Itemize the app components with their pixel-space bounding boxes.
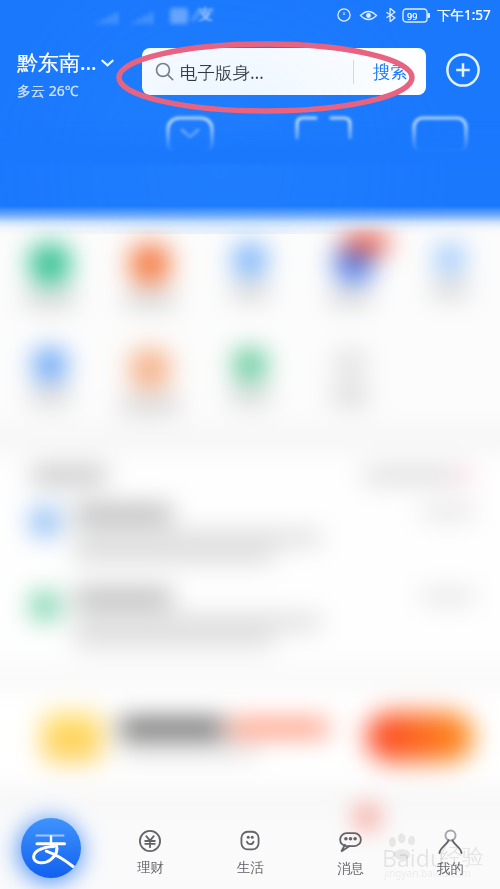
staticText: 黔东南…	[17, 48, 97, 77]
button[interactable]: 我的	[400, 800, 500, 889]
button[interactable]: 电子版身…	[142, 48, 426, 95]
staticText: 生活	[237, 859, 264, 876]
staticText: Baidu	[382, 842, 445, 873]
staticText: 下午1:57	[437, 6, 491, 24]
button[interactable]: 消息	[300, 800, 400, 889]
staticText: 我的	[437, 860, 464, 877]
staticText: 99	[407, 10, 418, 22]
staticText: 电子版身…	[180, 60, 264, 84]
button[interactable]: 生活	[200, 800, 300, 889]
staticText: 多云 26℃	[17, 81, 79, 100]
staticText: 消息	[337, 860, 364, 877]
staticText: 经验	[440, 843, 484, 871]
button[interactable]: 支付宝 首页	[0, 800, 100, 889]
staticText: 支	[198, 5, 213, 24]
staticText: 理财	[137, 859, 164, 876]
button[interactable]: Add	[446, 53, 480, 87]
button[interactable]: 理财	[100, 800, 200, 889]
staticText: 搜索	[373, 61, 408, 83]
staticText: jingyan.baidu.com	[384, 866, 471, 880]
